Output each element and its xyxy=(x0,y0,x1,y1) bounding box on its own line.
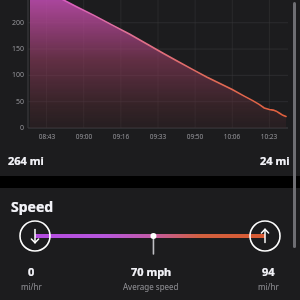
staticText: 50 xyxy=(2,97,24,107)
staticText: mi/hr xyxy=(258,281,279,292)
staticText: Average speed xyxy=(123,281,179,292)
staticText: 70 mph xyxy=(131,264,172,279)
button[interactable]: Increase speed xyxy=(250,221,280,251)
staticText: 24 mi xyxy=(260,153,290,168)
staticText: 09:50 xyxy=(179,132,211,142)
staticText: 09:00 xyxy=(68,132,100,142)
staticText: 200 xyxy=(2,18,24,28)
staticText: 100 xyxy=(2,70,24,80)
staticText: 150 xyxy=(2,44,24,54)
staticText: Speed xyxy=(11,197,54,216)
staticText: 264 mi xyxy=(8,153,44,168)
staticText: 08:43 xyxy=(31,132,63,142)
staticText: 10:06 xyxy=(216,132,248,142)
staticText: 94 xyxy=(262,264,275,279)
button[interactable]: 200 xyxy=(0,0,300,176)
staticText: 09:33 xyxy=(142,132,174,142)
staticText: 0 xyxy=(28,264,35,279)
staticText: 09:16 xyxy=(105,132,137,142)
staticText: 10:23 xyxy=(253,132,285,142)
button[interactable]: Decrease speed xyxy=(20,221,50,251)
staticText: mi/hr xyxy=(21,281,42,292)
staticText: 0 xyxy=(2,123,24,133)
